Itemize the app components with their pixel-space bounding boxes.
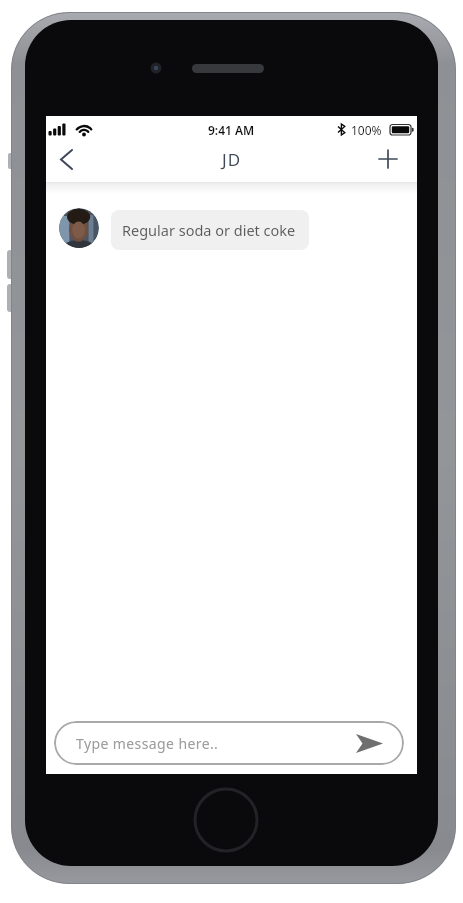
staticText: 100%: [351, 122, 382, 138]
button[interactable]: [355, 732, 383, 754]
staticText: Regular soda or diet coke: [122, 220, 296, 240]
staticText: Type message here..: [76, 734, 219, 753]
button[interactable]: Type message here..: [54, 721, 404, 765]
button[interactable]: [59, 208, 99, 248]
button[interactable]: [373, 144, 403, 174]
staticText: JD: [222, 148, 242, 171]
staticText: 9:41 AM: [208, 122, 255, 138]
button[interactable]: [52, 144, 80, 174]
